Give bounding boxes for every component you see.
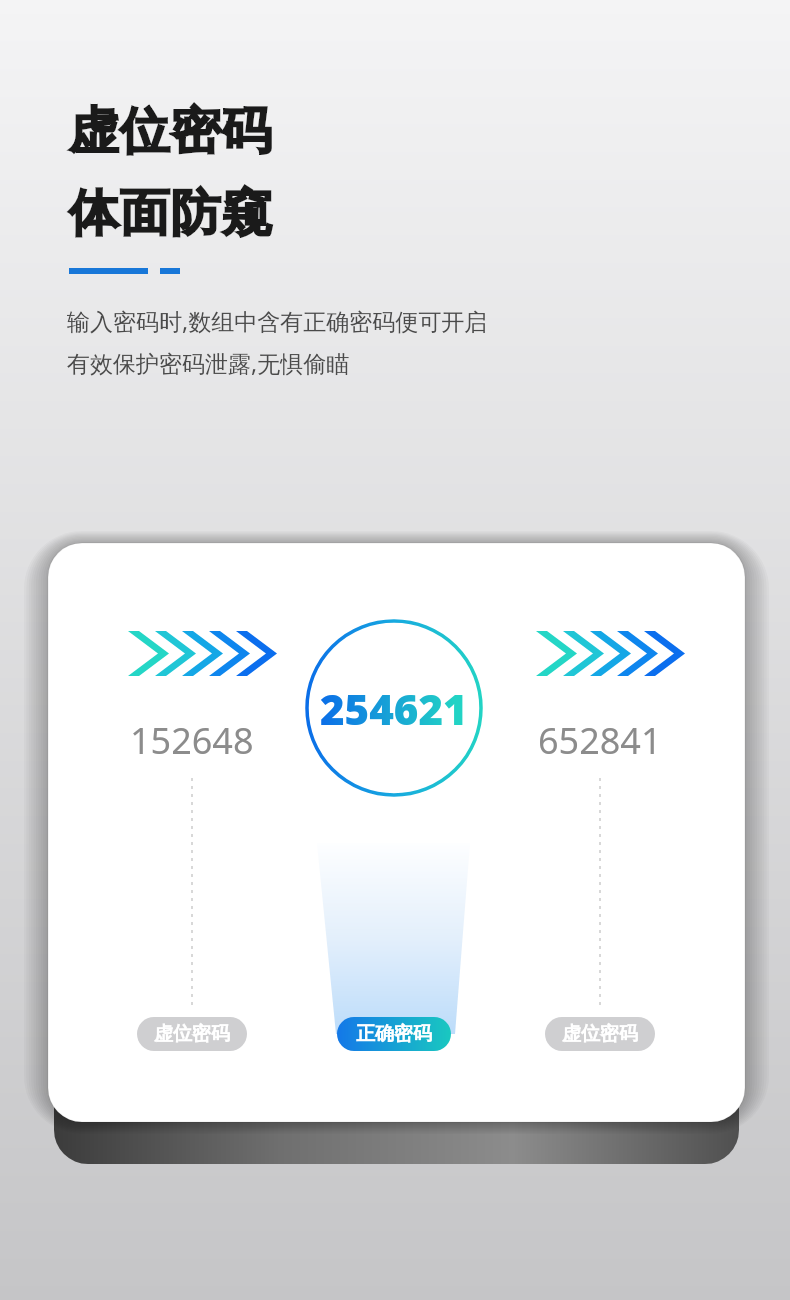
button[interactable]: Decoy password illustration	[0, 0, 790, 1300]
